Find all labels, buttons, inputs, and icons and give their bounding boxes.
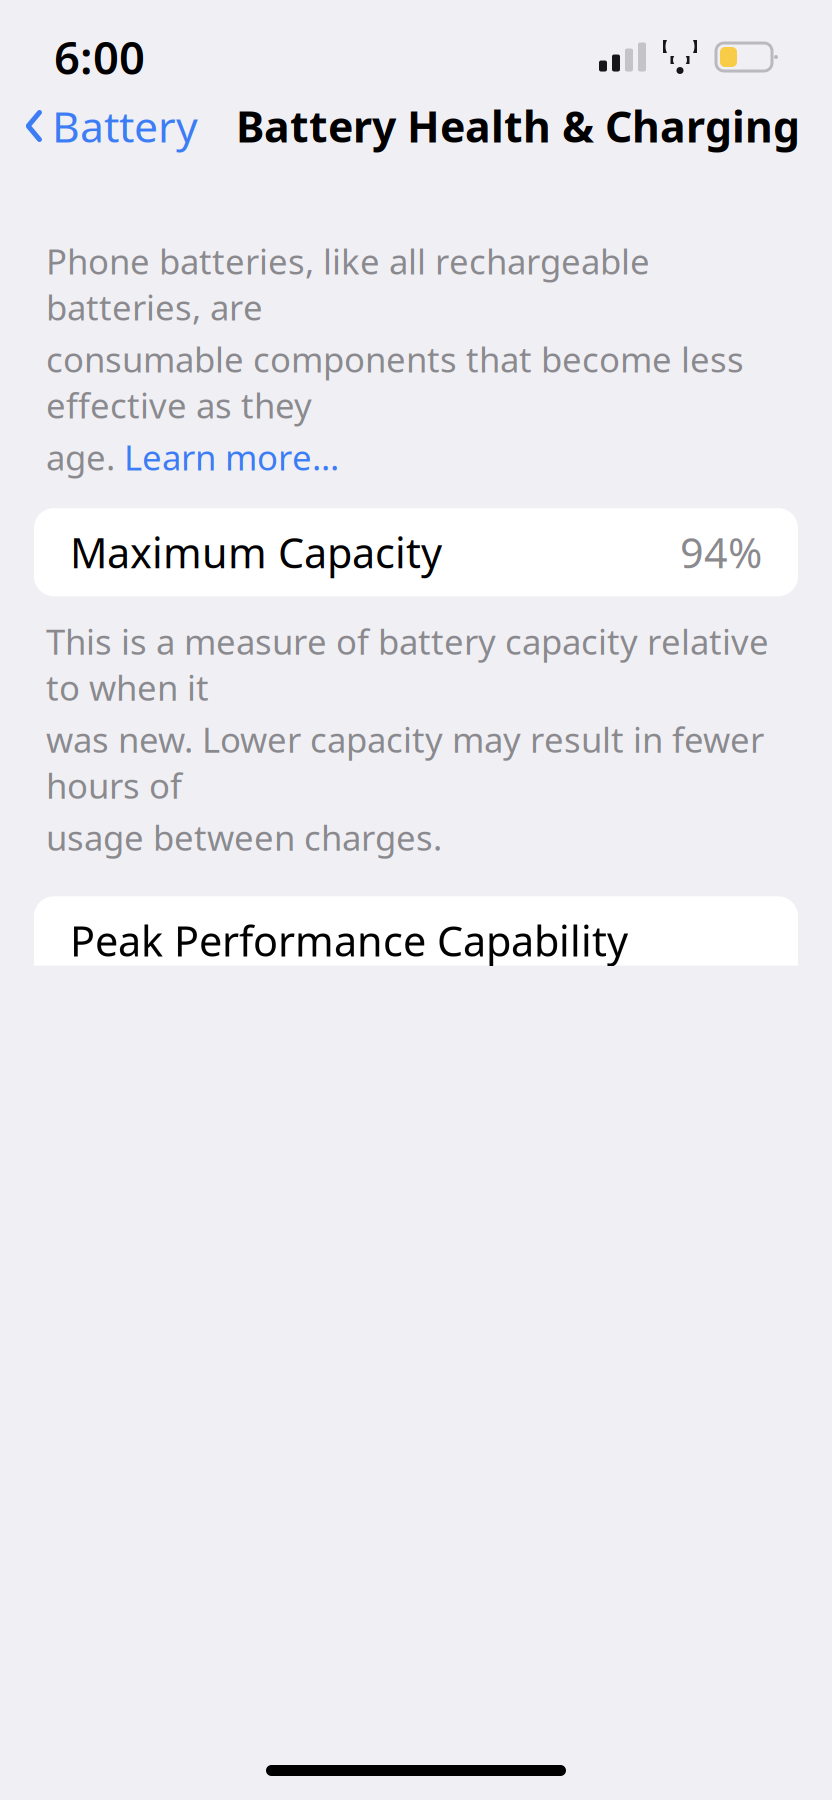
staticText: age. <box>46 434 124 480</box>
button[interactable]: Peak Performance Capability <box>34 896 798 984</box>
staticText: consumable components that become less e… <box>46 336 744 428</box>
staticText: 94% <box>680 525 762 580</box>
staticText: Battery Health & Charging <box>236 98 800 154</box>
button[interactable]: Learn more... <box>124 434 339 480</box>
staticText: was new. Lower capacity may result in fe… <box>46 716 764 808</box>
staticText: Phone batteries, like all rechargeable b… <box>46 238 650 330</box>
staticText: Learn more... <box>124 434 339 480</box>
staticText: This is a measure of battery capacity re… <box>46 618 769 710</box>
staticText: Maximum Capacity <box>70 525 442 580</box>
staticText: Battery <box>52 98 198 154</box>
staticText: Peak Performance Capability <box>70 913 628 968</box>
button[interactable]: Maximum Capacity <box>34 508 798 596</box>
button[interactable]: Battery <box>24 90 198 162</box>
staticText: 6:00 <box>54 27 145 87</box>
staticText: usage between charges. <box>46 814 442 860</box>
